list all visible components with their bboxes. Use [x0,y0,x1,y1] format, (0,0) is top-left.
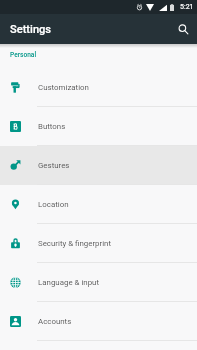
staticText: Security & fingerprint [38,239,112,248]
staticText: Location [38,200,69,209]
button[interactable]: Buttons [0,107,197,146]
staticText: Accounts [38,317,72,326]
staticText: Personal [10,51,37,59]
button[interactable]: Customization [0,68,197,107]
button[interactable]: Search [169,15,197,43]
button[interactable]: Gestures [0,146,197,185]
button[interactable]: Location [0,185,197,224]
staticText: Buttons [38,122,66,131]
staticText: Customization [38,83,89,92]
button[interactable]: Security & fingerprint [0,224,197,263]
staticText: Language & input [38,278,100,287]
button[interactable]: Language & input [0,263,197,302]
button[interactable]: Accounts [0,302,197,341]
staticText: Gestures [38,161,70,170]
staticText: 5:21 [180,3,194,11]
staticText: Settings [10,23,52,36]
